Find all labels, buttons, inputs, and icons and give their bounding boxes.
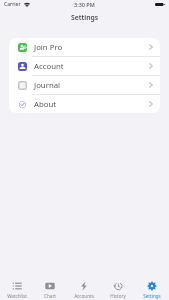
button[interactable]: Accounts [67,277,101,300]
staticText: Journal [34,80,61,91]
staticText: Join Pro [34,42,63,53]
button[interactable]: About [9,95,160,113]
staticText: Watchlist [7,293,27,299]
button[interactable]: Journal [9,76,160,94]
button[interactable]: Chart [33,277,67,300]
button[interactable]: Watchlist [0,277,33,300]
staticText: Settings [71,13,99,22]
staticText: Carrier [4,1,21,8]
button[interactable]: Settings [135,277,169,300]
button[interactable]: Join Pro [9,38,160,56]
button[interactable]: Account [9,57,160,75]
staticText: About [34,99,57,110]
staticText: 3:30 PM [74,1,95,8]
staticText: Settings [143,293,161,299]
staticText: Accounts [74,293,94,299]
button[interactable]: History [101,277,135,300]
staticText: History [110,293,126,299]
staticText: Chart [44,293,56,299]
staticText: Account [34,61,64,72]
